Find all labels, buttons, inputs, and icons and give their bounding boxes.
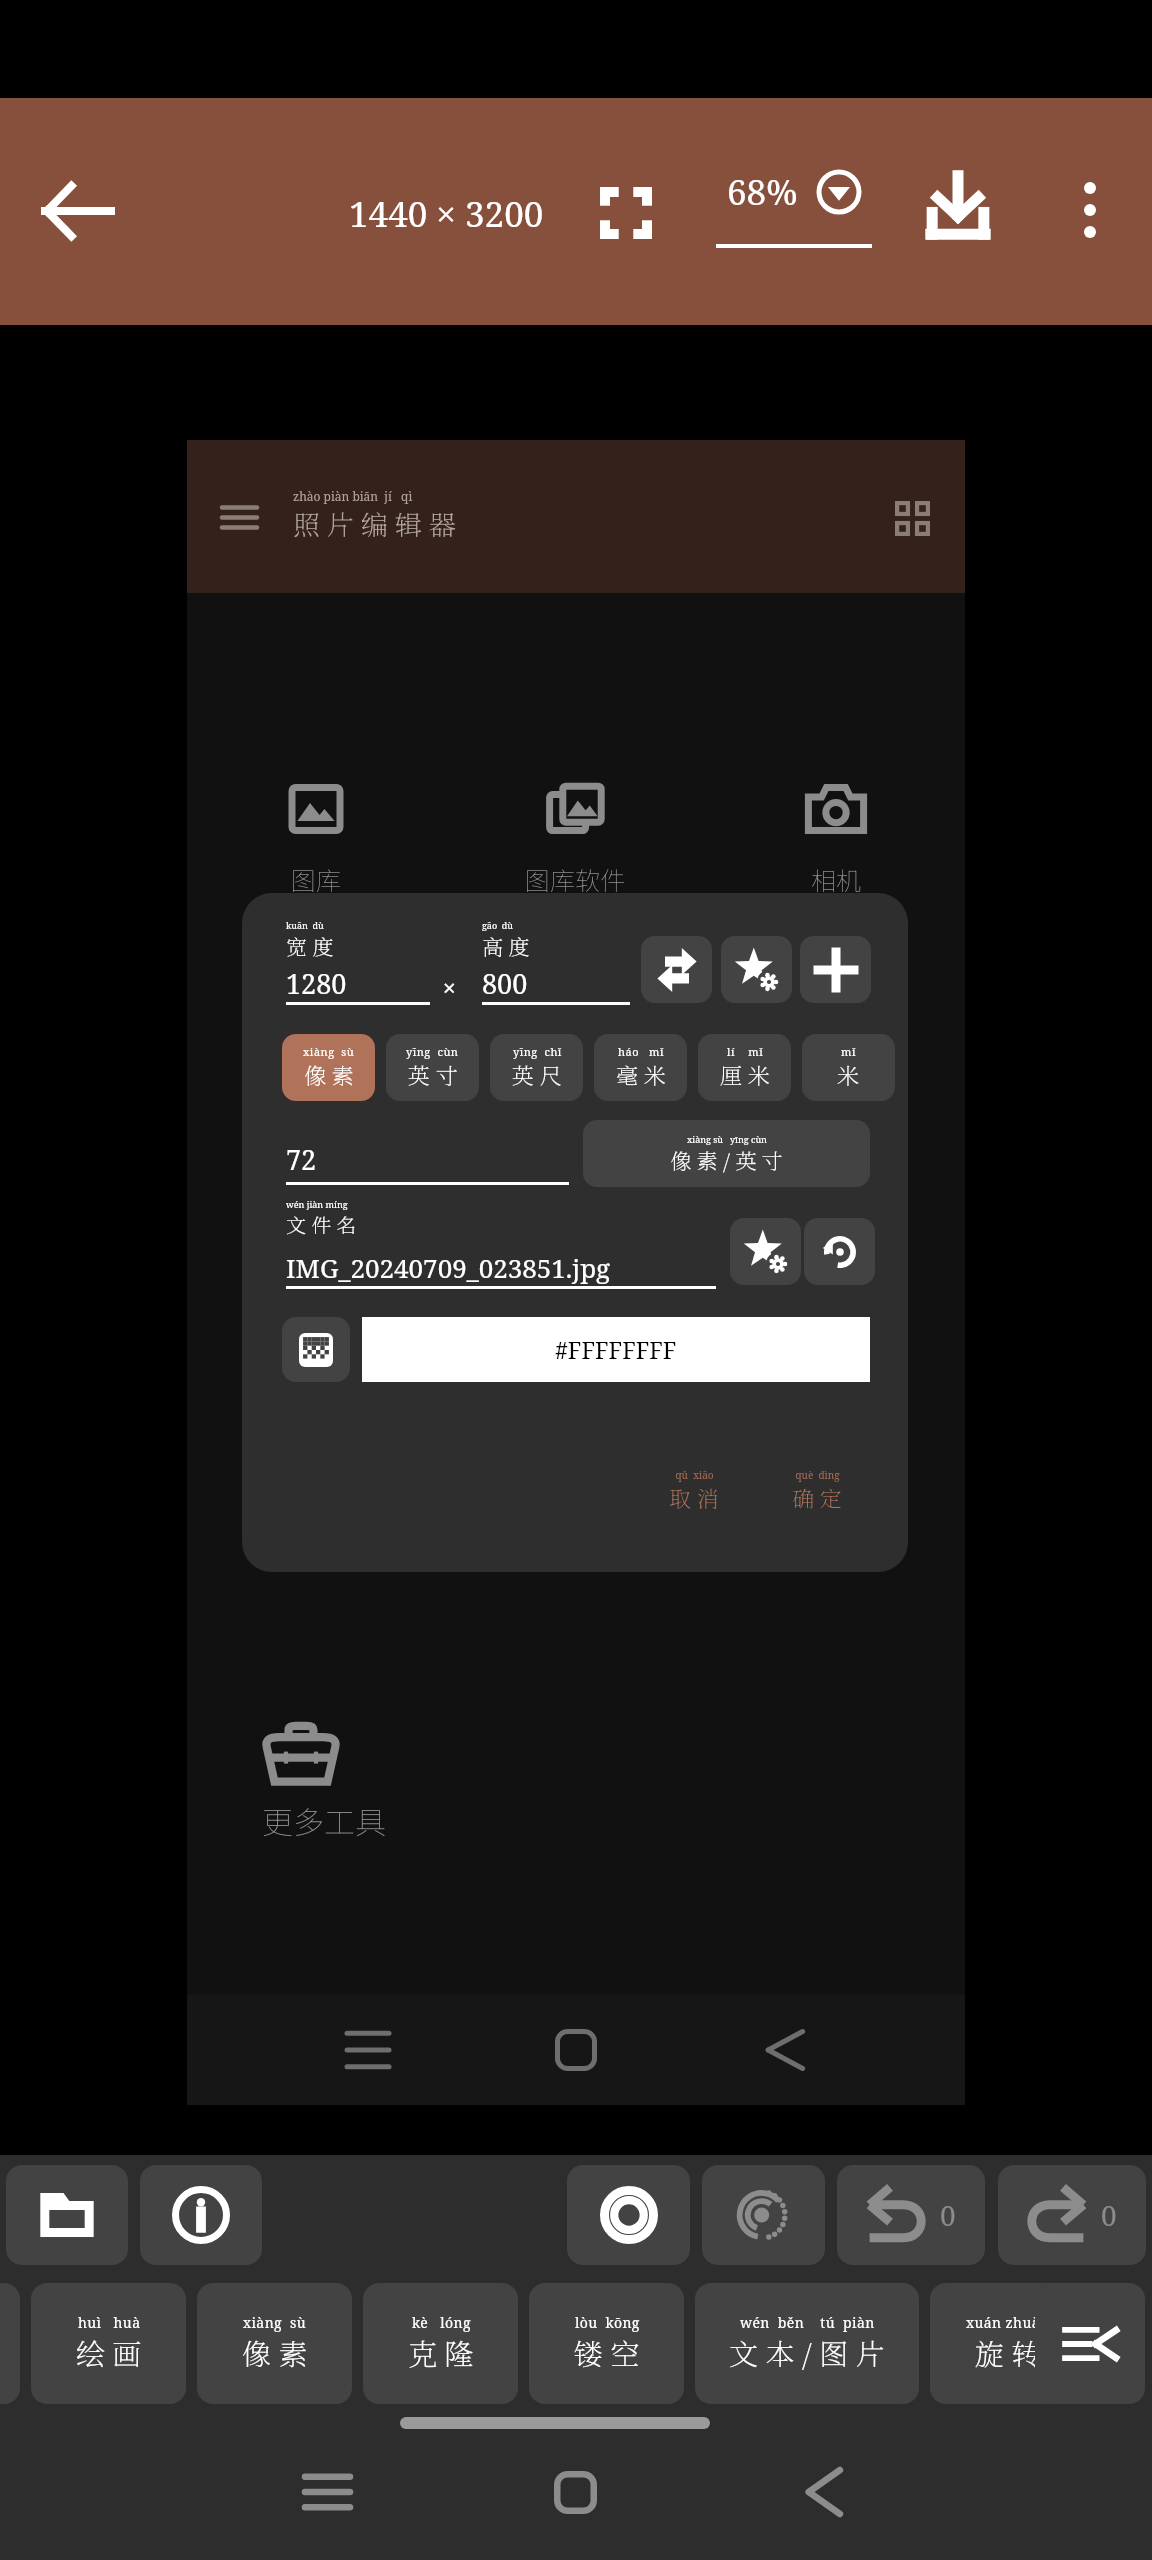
staticText: kuān dù	[286, 919, 324, 931]
button[interactable]: Transparent background	[282, 1317, 350, 1382]
button[interactable]: Redo	[998, 2165, 1146, 2265]
staticText: xiàng sù yīng cùn	[687, 1133, 767, 1145]
staticText: 英 尺	[512, 1059, 562, 1091]
button[interactable]: Home	[515, 2432, 635, 2552]
staticText: 图库	[291, 861, 342, 897]
staticText: 宽 度	[286, 931, 334, 961]
staticText: 旋 转	[975, 2332, 1041, 2374]
staticText: 72	[286, 1141, 317, 1178]
button[interactable]: xuán zhuǎn	[0, 2283, 20, 2404]
staticText: 高 度	[482, 931, 530, 961]
staticText: xiàng sù	[243, 2313, 307, 2332]
button[interactable]: Recents	[267, 2432, 387, 2552]
staticText: yīng chǐ	[513, 1044, 562, 1059]
staticText: 文 本 / 图 片	[729, 2332, 885, 2374]
button[interactable]: xiàng sù	[197, 2283, 352, 2404]
staticText: wén běn tú piàn	[740, 2313, 875, 2332]
staticText: 镂 空	[574, 2332, 640, 2374]
staticText: 0	[940, 2196, 956, 2234]
button[interactable]: xuán zhuǎn	[930, 2283, 1085, 2404]
staticText: 1440 × 3200	[349, 190, 544, 238]
button[interactable]: xiàng sù yīng cùn	[583, 1120, 870, 1187]
staticText: huì huà	[78, 2313, 141, 2332]
button[interactable]: wén běn tú piàn	[695, 2283, 919, 2404]
staticText: 米	[837, 1059, 860, 1091]
staticText: 0	[1101, 2196, 1117, 2234]
staticText: 克 隆	[408, 2332, 474, 2374]
button[interactable]: #FFFFFFFF	[362, 1317, 870, 1382]
staticText: 800	[482, 965, 528, 1002]
button[interactable]: xiàng sù	[282, 1034, 375, 1101]
button[interactable]: Add preset	[800, 936, 871, 1003]
button[interactable]: Suggest name	[730, 1218, 801, 1285]
button[interactable]: kè lóng	[363, 2283, 518, 2404]
staticText: 厘 米	[720, 1059, 770, 1091]
button[interactable]: què dìng	[777, 1468, 857, 1514]
button[interactable]: 相机	[806, 779, 866, 897]
staticText: 照 片 编 辑 器	[293, 504, 456, 543]
staticText: 像 素	[304, 1059, 354, 1091]
button[interactable]: 68%	[700, 166, 888, 262]
staticText: 确 定	[792, 1482, 842, 1514]
staticText: 像 素 / 英 寸	[670, 1145, 783, 1175]
staticText: 文 件 名	[286, 1210, 357, 1239]
button[interactable]: Open file	[6, 2165, 128, 2265]
staticText: 取 消	[669, 1482, 719, 1514]
button[interactable]: 图库软件	[525, 779, 626, 897]
button[interactable]: Undo	[837, 2165, 985, 2265]
staticText: 1280	[286, 965, 347, 1002]
button[interactable]: mǐ	[802, 1034, 895, 1101]
button[interactable]: lòu kōng	[529, 2283, 684, 2404]
staticText: lòu kōng	[575, 2313, 640, 2332]
staticText: háo mǐ	[618, 1044, 665, 1059]
button[interactable]: 图库	[286, 779, 346, 897]
button[interactable]: Back	[24, 157, 132, 265]
staticText: 68%	[727, 168, 798, 216]
staticText: #FFFFFFFF	[555, 1334, 677, 1365]
staticText: zhào piàn biān jí qì	[293, 488, 413, 504]
button[interactable]: Presets	[721, 936, 792, 1003]
button[interactable]: Reset name	[804, 1218, 875, 1285]
staticText: xuán zhuǎn	[966, 2313, 1050, 2332]
button[interactable]: Back	[764, 2432, 884, 2552]
staticText: 毫 米	[616, 1059, 666, 1091]
button[interactable]: Menu	[214, 497, 265, 538]
staticText: 更多工具	[262, 1798, 386, 1843]
button[interactable]: yīng chǐ	[490, 1034, 583, 1101]
button[interactable]: Download	[906, 155, 1010, 259]
button[interactable]: háo mǐ	[594, 1034, 687, 1101]
staticText: 像 素	[242, 2332, 308, 2374]
staticText: kè lóng	[412, 2313, 471, 2332]
button[interactable]: 更多工具	[262, 1724, 386, 1843]
button[interactable]: More tools	[1035, 2283, 1145, 2404]
button[interactable]: More options	[1040, 160, 1140, 260]
button[interactable]: Grid view	[883, 489, 942, 548]
button[interactable]: Progress	[702, 2165, 825, 2265]
staticText: xiàng sù	[303, 1044, 355, 1059]
button[interactable]: Swap dimensions	[641, 936, 712, 1003]
staticText: lí mǐ	[727, 1044, 764, 1059]
staticText: wén jiàn míng	[286, 1198, 348, 1210]
staticText: gāo dù	[482, 919, 514, 931]
staticText: yīng cùn	[406, 1044, 459, 1059]
button[interactable]: lí mǐ	[698, 1034, 791, 1101]
staticText: 相机	[811, 861, 862, 897]
staticText: mǐ	[841, 1044, 856, 1059]
button[interactable]: Fit to screen	[578, 165, 674, 261]
button[interactable]: Record	[567, 2165, 690, 2265]
staticText: què dìng	[795, 1468, 840, 1482]
button[interactable]: qǔ xiāo	[654, 1468, 734, 1514]
staticText: qǔ xiāo	[675, 1468, 714, 1482]
staticText: 英 寸	[408, 1059, 458, 1091]
staticText: IMG_20240709_023851.jpg	[286, 1250, 611, 1285]
button[interactable]: Info	[140, 2165, 262, 2265]
button[interactable]: yīng cùn	[386, 1034, 479, 1101]
staticText: ×	[443, 972, 456, 1002]
button[interactable]: huì huà	[31, 2283, 186, 2404]
button[interactable]: 1440 × 3200	[330, 190, 562, 238]
staticText: 图库软件	[525, 861, 626, 897]
staticText: 绘 画	[76, 2332, 142, 2374]
